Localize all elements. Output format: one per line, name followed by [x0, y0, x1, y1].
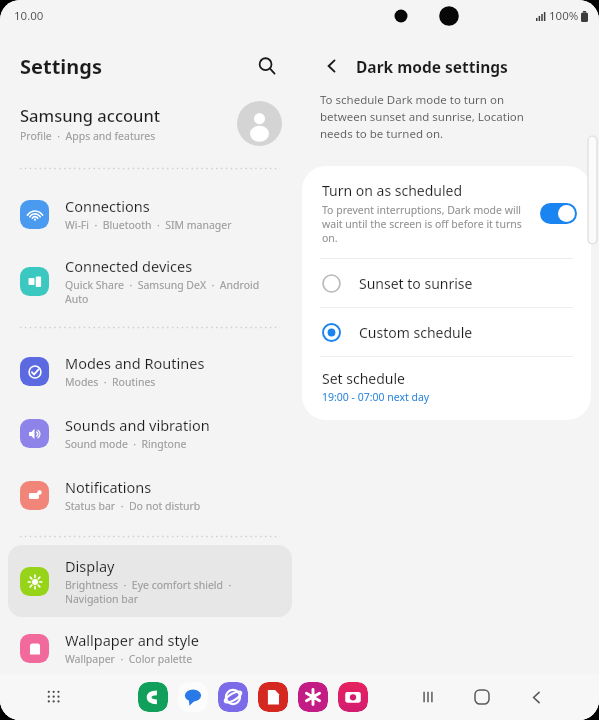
staticText: Profile · Apps and features	[20, 129, 156, 143]
button[interactable]: Sounds and vibration	[8, 402, 292, 464]
button[interactable]: Sunset to sunrise	[302, 259, 591, 307]
staticText: Sounds and vibration	[65, 415, 210, 435]
button[interactable]: Files	[258, 682, 288, 712]
staticText: To prevent interruptions, Dark mode will…	[322, 203, 526, 245]
staticText: Set schedule	[322, 369, 406, 388]
staticText: Samsung account	[20, 104, 161, 126]
staticText: Settings	[20, 53, 102, 80]
staticText: Brightness · Eye comfort shield · Naviga…	[65, 578, 232, 606]
staticText: Modes · Routines	[65, 375, 156, 389]
button[interactable]: Samsung account	[0, 92, 300, 154]
button[interactable]: Search	[248, 47, 286, 85]
button[interactable]: Display	[8, 545, 292, 617]
staticText: Dark mode settings	[356, 56, 508, 77]
button[interactable]: Phone	[138, 682, 168, 712]
button[interactable]: Home	[465, 680, 499, 714]
staticText: Connections	[65, 196, 150, 216]
staticText: Wi-Fi · Bluetooth · SIM manager	[65, 218, 232, 232]
button[interactable]: Internet	[218, 682, 248, 712]
button[interactable]: Turn on as scheduled	[540, 203, 577, 224]
staticText: To schedule Dark mode to turn on between…	[320, 92, 553, 142]
button[interactable]: Wallpaper and style	[8, 617, 292, 679]
button[interactable]: Connected devices	[8, 245, 292, 317]
button[interactable]: Recents	[411, 680, 445, 714]
button[interactable]: Back	[316, 50, 348, 82]
staticText: Modes and Routines	[65, 353, 205, 373]
button[interactable]: Gallery	[298, 682, 328, 712]
staticText: Quick Share · Samsung DeX · Android Auto	[65, 278, 260, 306]
staticText: Wallpaper · Color palette	[65, 652, 193, 666]
button[interactable]: Turn on as scheduled	[302, 166, 591, 258]
button[interactable]: Back	[519, 680, 553, 714]
staticText: Sunset to sunrise	[359, 274, 473, 293]
button[interactable]: Apps	[38, 681, 70, 713]
staticText: Turn on as scheduled	[322, 181, 463, 200]
staticText: 19:00 - 07:00 next day	[322, 390, 430, 404]
button[interactable]: Messages	[178, 682, 208, 712]
staticText: Display	[65, 556, 115, 576]
button[interactable]: Connections	[8, 183, 292, 245]
button[interactable]: Camera	[338, 682, 368, 712]
staticText: Sound mode · Ringtone	[65, 437, 187, 451]
staticText: Wallpaper and style	[65, 630, 199, 650]
button[interactable]: Modes and Routines	[8, 340, 292, 402]
button[interactable]: Set schedule	[302, 357, 591, 420]
staticText: Custom schedule	[359, 323, 473, 342]
staticText: Notifications	[65, 477, 152, 497]
button[interactable]: Custom schedule	[302, 308, 591, 356]
staticText: 10.00	[14, 8, 44, 24]
staticText: Status bar · Do not disturb	[65, 499, 201, 513]
staticText: 100%	[549, 8, 579, 24]
staticText: Connected devices	[65, 256, 193, 276]
button[interactable]: Notifications	[8, 464, 292, 526]
